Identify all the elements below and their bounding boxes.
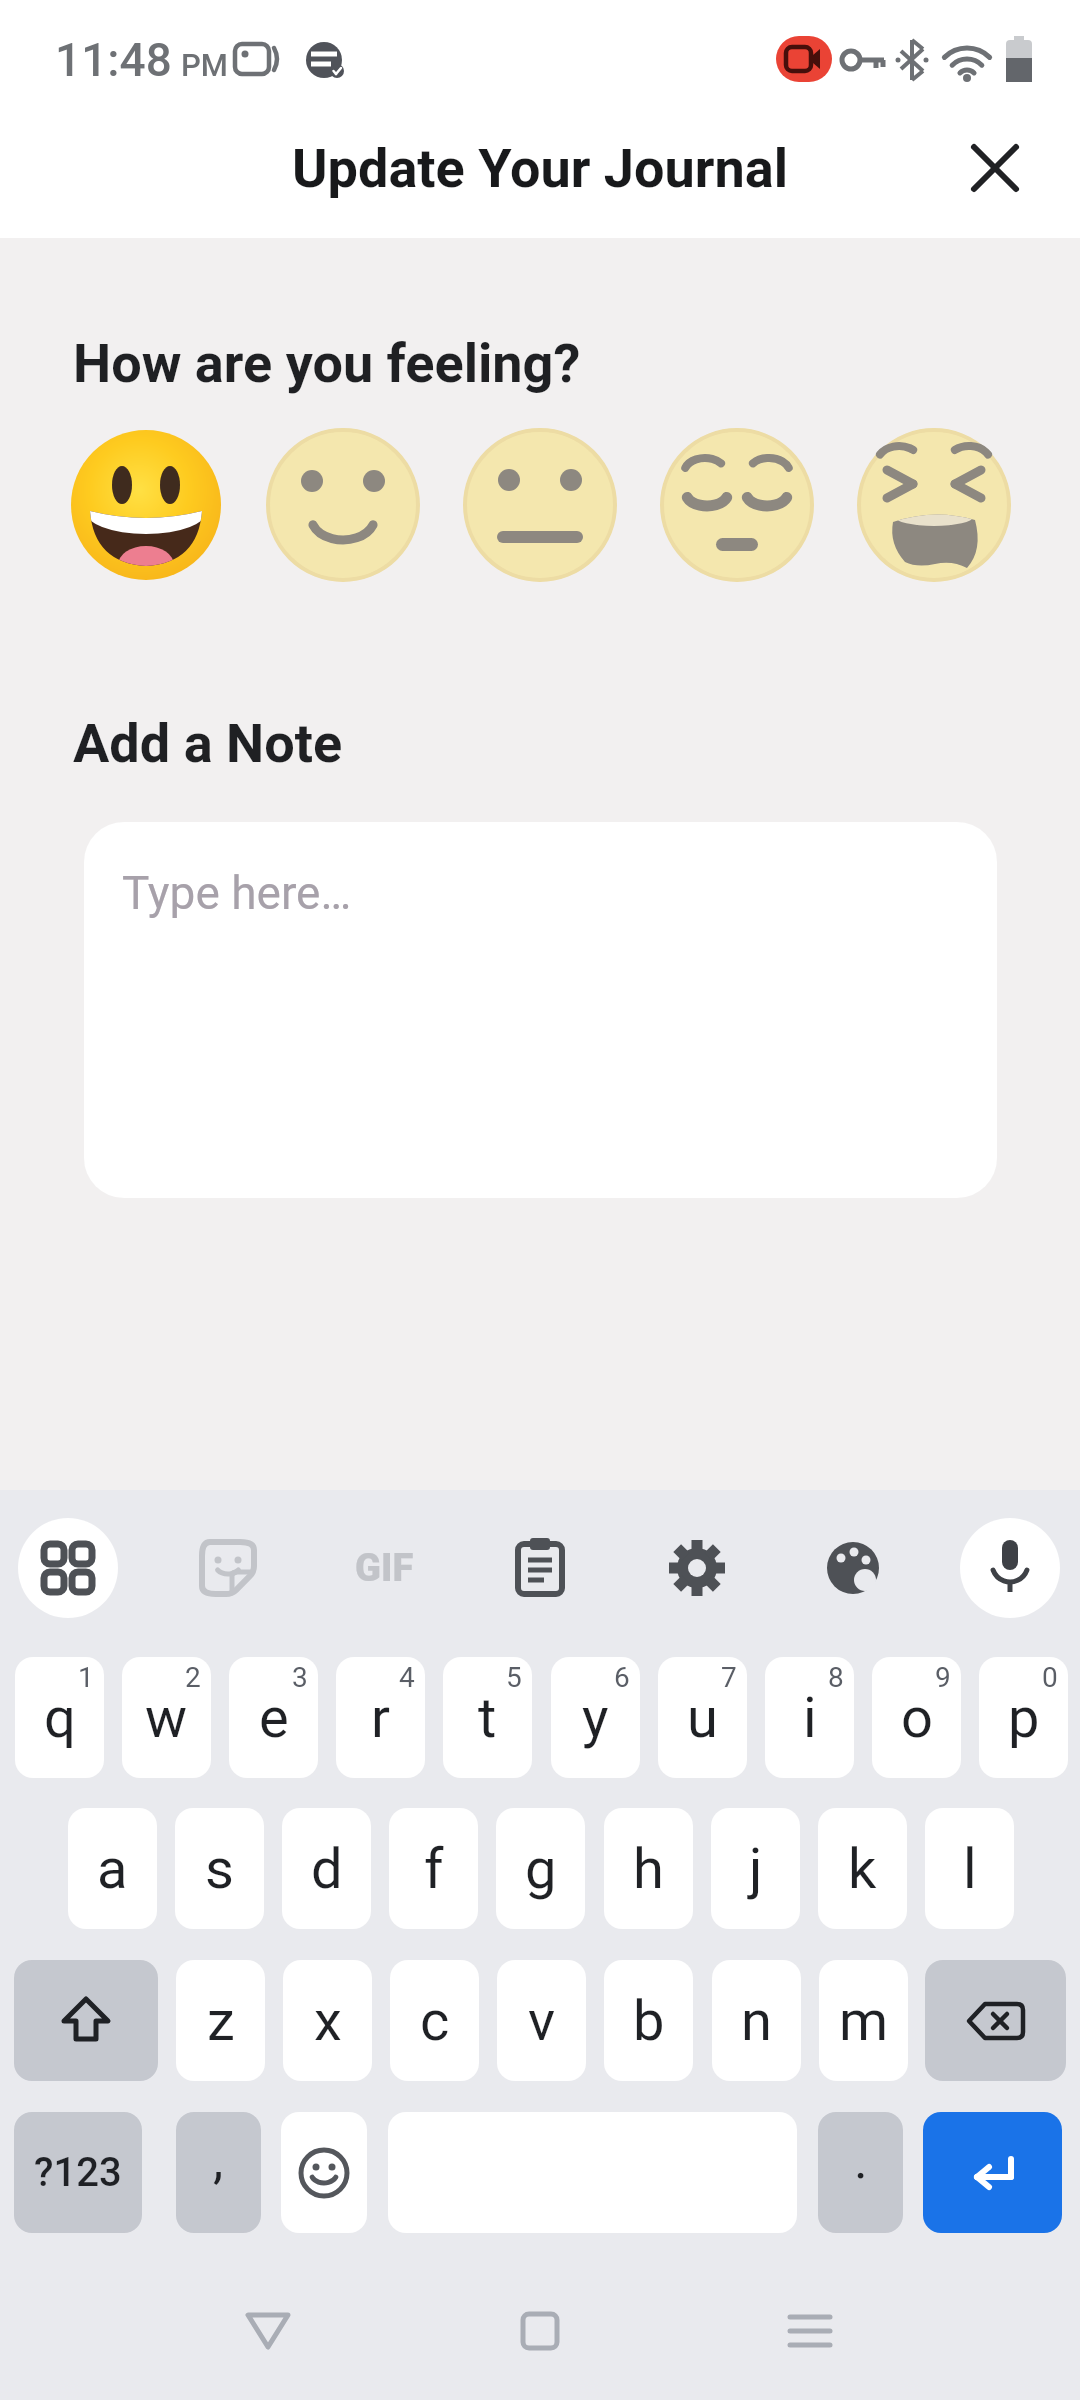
staticText: b — [633, 1988, 665, 2054]
staticText: 2 — [185, 1661, 201, 1694]
staticText: Add a Note — [73, 712, 343, 775]
staticText: PM — [181, 47, 228, 83]
button[interactable] — [14, 1960, 158, 2081]
button[interactable]: n — [712, 1960, 801, 2081]
button[interactable] — [508, 1536, 572, 1600]
button[interactable] — [18, 1518, 118, 1618]
staticText: 0 — [1042, 1661, 1058, 1694]
button[interactable]: k — [818, 1808, 907, 1929]
staticText: w — [145, 1685, 188, 1751]
button[interactable]: h — [604, 1808, 693, 1929]
staticText: i — [803, 1685, 817, 1751]
button[interactable]: c — [390, 1960, 479, 2081]
staticText: v — [528, 1988, 556, 2054]
staticText: 9 — [935, 1661, 951, 1694]
button[interactable]: e — [229, 1657, 318, 1778]
button[interactable]: ?123 — [14, 2112, 142, 2233]
staticText: l — [963, 1836, 977, 1902]
staticText: ?123 — [34, 2149, 122, 2196]
button[interactable] — [508, 2299, 572, 2363]
staticText: f — [424, 1836, 444, 1902]
staticText: m — [839, 1988, 889, 2054]
staticText: s — [205, 1836, 234, 1902]
button[interactable] — [196, 1536, 260, 1600]
staticText: . — [854, 2130, 868, 2191]
staticText: 7 — [721, 1661, 737, 1694]
button[interactable]: g — [496, 1808, 585, 1929]
button[interactable]: r — [336, 1657, 425, 1778]
staticText: Update Your Journal — [292, 137, 789, 200]
staticText: r — [371, 1685, 390, 1751]
staticText: x — [314, 1988, 342, 2054]
button[interactable] — [778, 2299, 842, 2363]
staticText: t — [478, 1685, 497, 1751]
button[interactable]: . — [818, 2112, 903, 2233]
button[interactable]: q — [15, 1657, 104, 1778]
button[interactable]: l — [925, 1808, 1014, 1929]
button[interactable]: y — [551, 1657, 640, 1778]
button[interactable] — [963, 136, 1027, 200]
staticText: c — [420, 1988, 450, 2054]
button[interactable]: u — [658, 1657, 747, 1778]
button[interactable] — [660, 428, 814, 582]
button[interactable]: i — [765, 1657, 854, 1778]
button[interactable] — [857, 428, 1011, 582]
button[interactable]: m — [819, 1960, 908, 2081]
staticText: n — [741, 1988, 772, 2054]
button[interactable]: , — [176, 2112, 261, 2233]
staticText: 6 — [614, 1661, 630, 1694]
staticText: e — [259, 1685, 289, 1751]
button[interactable] — [665, 1536, 729, 1600]
button[interactable]: o — [872, 1657, 961, 1778]
button[interactable]: s — [175, 1808, 264, 1929]
staticText: GIF — [355, 1546, 414, 1591]
button[interactable] — [821, 1536, 885, 1600]
button[interactable]: Type here… — [84, 822, 997, 1198]
staticText: a — [97, 1836, 128, 1902]
button[interactable] — [960, 1518, 1060, 1618]
staticText: j — [749, 1836, 763, 1902]
staticText: z — [207, 1988, 235, 2054]
button[interactable] — [266, 428, 420, 582]
staticText: g — [525, 1836, 557, 1902]
staticText: p — [1008, 1685, 1040, 1751]
button[interactable] — [925, 1960, 1066, 2081]
button[interactable]: d — [282, 1808, 371, 1929]
staticText: h — [633, 1836, 664, 1902]
button[interactable] — [281, 2112, 367, 2233]
button[interactable]: w — [122, 1657, 211, 1778]
button[interactable]: b — [604, 1960, 693, 2081]
staticText: k — [848, 1836, 877, 1902]
staticText: 8 — [828, 1661, 844, 1694]
button[interactable] — [69, 428, 223, 582]
button[interactable] — [463, 428, 617, 582]
staticText: 1 — [78, 1661, 94, 1694]
staticText: u — [687, 1685, 718, 1751]
button[interactable]: x — [283, 1960, 372, 2081]
staticText: 11:48 — [55, 33, 172, 87]
button[interactable]: GIF — [344, 1536, 424, 1600]
button[interactable] — [923, 2112, 1062, 2233]
button[interactable]: a — [68, 1808, 157, 1929]
button[interactable]: z — [176, 1960, 265, 2081]
staticText: Type here… — [122, 866, 352, 920]
staticText: 5 — [506, 1661, 522, 1694]
button[interactable]: v — [497, 1960, 586, 2081]
staticText: , — [213, 2130, 224, 2191]
button[interactable] — [236, 2299, 300, 2363]
staticText: 3 — [292, 1661, 308, 1694]
button[interactable]: f — [389, 1808, 478, 1929]
staticText: q — [44, 1685, 76, 1751]
staticText: o — [901, 1685, 933, 1751]
staticText: How are you feeling? — [73, 332, 581, 395]
button[interactable]: j — [711, 1808, 800, 1929]
button[interactable]: t — [443, 1657, 532, 1778]
staticText: y — [582, 1685, 609, 1751]
button[interactable]: p — [979, 1657, 1068, 1778]
staticText: 4 — [399, 1661, 415, 1694]
staticText: d — [311, 1836, 343, 1902]
